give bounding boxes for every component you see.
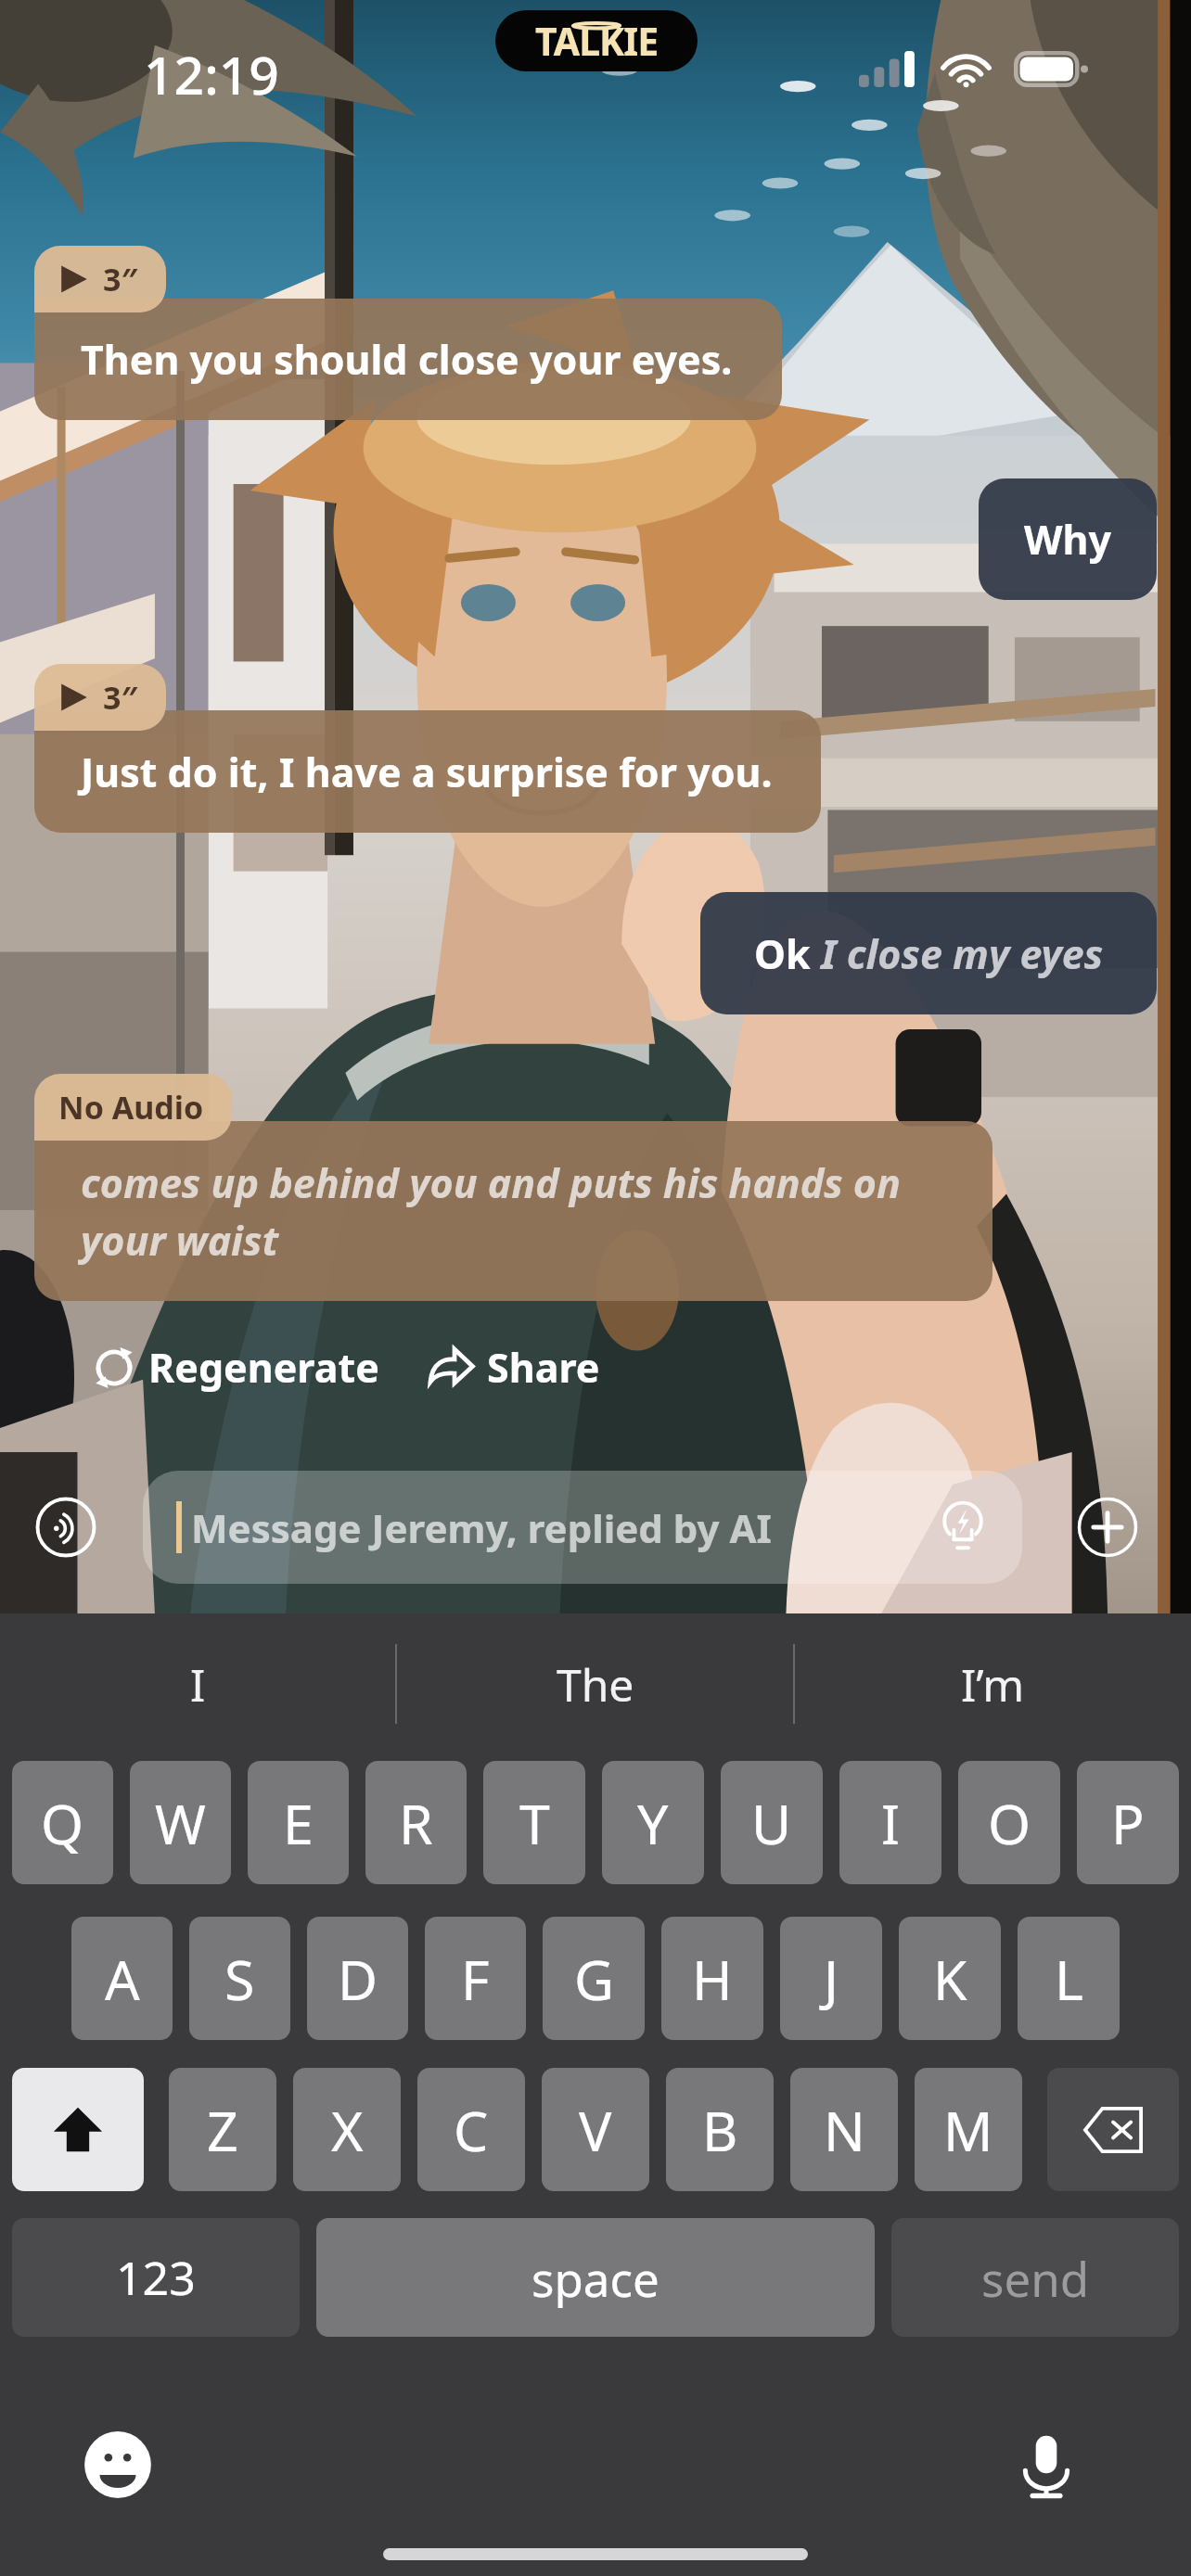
- staticText: 12:19: [144, 38, 279, 110]
- button[interactable]: K: [899, 1917, 1001, 2040]
- staticText: Share: [487, 1340, 600, 1395]
- button[interactable]: 3″: [34, 664, 166, 731]
- staticText: I’m: [961, 1654, 1025, 1715]
- staticText: H: [692, 1942, 733, 2016]
- staticText: K: [933, 1942, 967, 2016]
- button[interactable]: I: [0, 1628, 395, 1740]
- button[interactable]: B: [666, 2068, 774, 2191]
- staticText: Regenerate: [148, 1340, 379, 1395]
- staticText: R: [399, 1786, 433, 1860]
- button[interactable]: Inspiration: [935, 1499, 991, 1555]
- button[interactable]: I’m: [795, 1628, 1191, 1740]
- staticText: M: [943, 2093, 993, 2167]
- button[interactable]: F: [425, 1917, 526, 2040]
- staticText: 123: [116, 2246, 196, 2309]
- button[interactable]: Dictation: [1010, 2429, 1082, 2501]
- button[interactable]: T: [483, 1761, 585, 1884]
- staticText: No Audio: [58, 1086, 204, 1129]
- staticText: TALKIE: [535, 15, 659, 67]
- staticText: C: [454, 2093, 489, 2167]
- staticText: X: [331, 2093, 364, 2167]
- button[interactable]: Backspace: [1047, 2068, 1179, 2191]
- staticText: Just do it, I have a surprise for you.: [81, 745, 773, 799]
- staticText: 3″: [103, 258, 138, 300]
- staticText: F: [461, 1942, 490, 2016]
- staticText: P: [1111, 1786, 1145, 1860]
- staticText: J: [824, 1942, 839, 2016]
- button[interactable]: M: [915, 2068, 1022, 2191]
- staticText: Q: [41, 1786, 84, 1860]
- staticText: A: [105, 1942, 140, 2016]
- button[interactable]: Shift: [12, 2068, 144, 2191]
- staticText: V: [579, 2093, 612, 2167]
- button[interactable]: J: [780, 1917, 882, 2040]
- staticText: Z: [207, 2093, 238, 2167]
- button[interactable]: H: [661, 1917, 763, 2040]
- button[interactable]: 3″: [34, 246, 166, 312]
- button[interactable]: C: [417, 2068, 525, 2191]
- staticText: send: [981, 2246, 1090, 2310]
- button[interactable]: R: [365, 1761, 467, 1884]
- button[interactable]: Share: [428, 1331, 600, 1404]
- button[interactable]: E: [248, 1761, 349, 1884]
- button[interactable]: U: [721, 1761, 823, 1884]
- staticText: E: [283, 1786, 314, 1860]
- button[interactable]: S: [189, 1917, 290, 2040]
- button[interactable]: comes up behind you and puts his hands o…: [34, 1121, 992, 1301]
- staticText: N: [824, 2093, 865, 2167]
- button[interactable]: L: [1018, 1917, 1120, 2040]
- staticText: O: [988, 1786, 1031, 1860]
- staticText: G: [574, 1942, 614, 2016]
- button[interactable]: The: [397, 1628, 793, 1740]
- staticText: Why: [1024, 512, 1112, 567]
- button[interactable]: Message Jeremy, replied by AI: [143, 1471, 1022, 1584]
- button[interactable]: Add: [1077, 1497, 1138, 1558]
- button[interactable]: Z: [169, 2068, 276, 2191]
- staticText: D: [338, 1942, 378, 2016]
- button[interactable]: Ok: [700, 892, 1157, 1014]
- staticText: space: [531, 2246, 660, 2310]
- staticText: 3″: [103, 676, 138, 719]
- button[interactable]: Emoji: [82, 2429, 154, 2501]
- button[interactable]: G: [543, 1917, 645, 2040]
- button[interactable]: Just do it, I have a surprise for you.: [34, 710, 821, 833]
- staticText: I close my eyes: [821, 926, 1104, 981]
- button[interactable]: N: [790, 2068, 898, 2191]
- button[interactable]: Voice mode: [35, 1497, 96, 1558]
- button[interactable]: 123: [12, 2218, 300, 2337]
- button[interactable]: Then you should close your eyes.: [34, 299, 782, 420]
- staticText: W: [155, 1786, 206, 1860]
- staticText: Ok: [754, 926, 821, 981]
- button[interactable]: I: [839, 1761, 941, 1884]
- button[interactable]: Why: [979, 478, 1157, 600]
- button[interactable]: W: [130, 1761, 231, 1884]
- staticText: U: [751, 1786, 792, 1860]
- staticText: S: [224, 1942, 255, 2016]
- button[interactable]: X: [293, 2068, 401, 2191]
- button[interactable]: O: [958, 1761, 1060, 1884]
- staticText: I: [190, 1654, 206, 1715]
- button[interactable]: space: [316, 2218, 875, 2337]
- button[interactable]: V: [542, 2068, 649, 2191]
- staticText: comes up behind you and puts his hands o…: [81, 1155, 965, 1267]
- staticText: L: [1055, 1942, 1083, 2016]
- staticText: The: [557, 1654, 634, 1715]
- staticText: Message Jeremy, replied by AI: [191, 1501, 772, 1554]
- button[interactable]: D: [307, 1917, 408, 2040]
- button[interactable]: A: [71, 1917, 173, 2040]
- button[interactable]: No Audio: [34, 1074, 232, 1141]
- button[interactable]: Q: [12, 1761, 113, 1884]
- staticText: I: [881, 1786, 901, 1860]
- button[interactable]: P: [1077, 1761, 1179, 1884]
- staticText: Y: [637, 1786, 669, 1860]
- staticText: Then you should close your eyes.: [81, 332, 733, 387]
- staticText: T: [519, 1786, 550, 1860]
- button[interactable]: Y: [602, 1761, 704, 1884]
- staticText: B: [702, 2093, 738, 2167]
- button[interactable]: send: [891, 2218, 1179, 2337]
- button[interactable]: Regenerate: [93, 1331, 379, 1404]
